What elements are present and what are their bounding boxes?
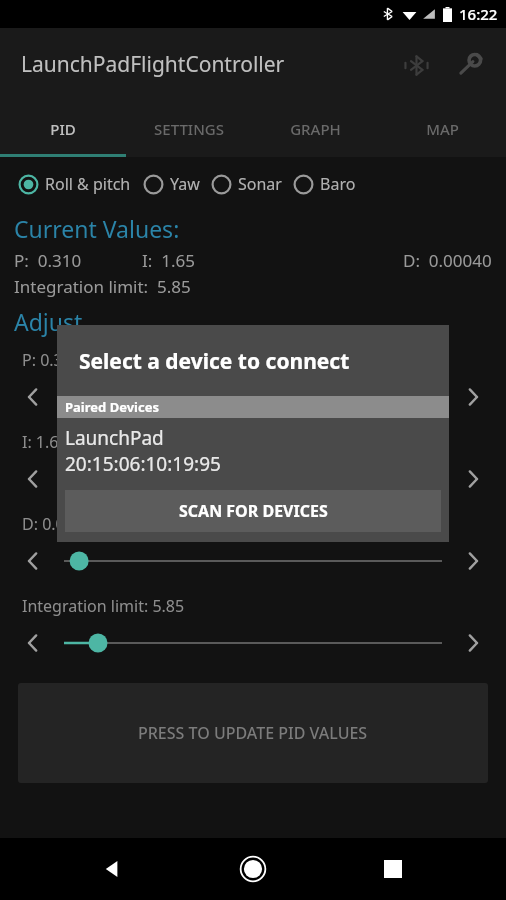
staticText: MAP [426, 119, 459, 139]
staticText: LaunchPad [65, 425, 164, 451]
button[interactable]: Bluetooth connect [394, 43, 438, 87]
staticText: Current Values: [14, 213, 180, 244]
staticText: I: 1.65 [22, 431, 68, 453]
button[interactable]: Sonar [211, 171, 282, 197]
button[interactable]: Home [226, 842, 280, 896]
button[interactable]: SETTINGS [126, 101, 252, 157]
staticText: D: 0.00040 [22, 513, 102, 535]
staticText: SETTINGS [154, 119, 224, 139]
button[interactable]: Decrease [10, 456, 56, 502]
staticText: Paired Devices [65, 398, 159, 416]
button[interactable] [56, 459, 450, 499]
staticText: PID [50, 119, 76, 139]
button[interactable]: Recent apps [366, 842, 420, 896]
staticText: GRAPH [290, 119, 341, 139]
button[interactable]: Increase [450, 538, 496, 584]
button[interactable]: LaunchPad [57, 418, 449, 486]
button[interactable]: MAP [379, 101, 506, 157]
staticText: SCAN FOR DEVICES [179, 500, 328, 522]
staticText: Roll & pitch [45, 173, 131, 195]
staticText: Sonar [238, 173, 282, 195]
button[interactable] [56, 541, 450, 581]
staticText: Integration limit: 5.85 [14, 275, 191, 298]
button[interactable] [56, 623, 450, 663]
staticText: Select a device to connect [79, 347, 350, 376]
staticText: Yaw [170, 173, 200, 195]
button[interactable]: Decrease [10, 620, 56, 666]
staticText: 16:22 [459, 4, 498, 24]
staticText: P: 0.310 [22, 349, 82, 371]
button[interactable]: PID [0, 101, 126, 157]
staticText: I: 1.65 [142, 249, 195, 272]
staticText: Integration limit: 5.85 [22, 595, 185, 617]
button[interactable] [56, 377, 450, 417]
button[interactable]: Settings [448, 43, 492, 87]
button[interactable]: PRESS TO UPDATE PID VALUES [18, 683, 488, 783]
button[interactable]: GRAPH [252, 101, 379, 157]
button[interactable]: Increase [450, 620, 496, 666]
button[interactable]: Decrease [10, 374, 56, 420]
button[interactable]: Increase [450, 456, 496, 502]
button[interactable]: Increase [450, 374, 496, 420]
staticText: P: 0.310 [14, 249, 82, 272]
staticText: 20:15:06:10:19:95 [65, 451, 221, 477]
staticText: Adjust [14, 306, 83, 337]
button[interactable]: Back [86, 842, 140, 896]
staticText: Baro [320, 173, 356, 195]
button[interactable]: Yaw [143, 171, 200, 197]
button[interactable]: Roll & pitch [18, 171, 131, 197]
button[interactable]: Decrease [10, 538, 56, 584]
button[interactable]: Baro [293, 171, 356, 197]
staticText: PRESS TO UPDATE PID VALUES [138, 722, 368, 744]
button[interactable]: SCAN FOR DEVICES [65, 490, 441, 532]
staticText: D: 0.00040 [403, 249, 492, 272]
staticText: LaunchPadFlightController [21, 50, 285, 79]
